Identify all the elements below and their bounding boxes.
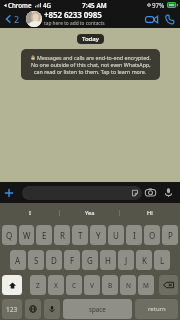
staticText: U <box>113 230 119 241</box>
button[interactable]: Profile photo <box>26 11 42 27</box>
button[interactable]: Stickers <box>22 186 142 200</box>
staticText: J <box>125 255 128 266</box>
staticText: F <box>70 255 75 266</box>
button[interactable]: L <box>154 250 170 270</box>
staticText: can read or listen to them. Tap to learn… <box>34 68 147 75</box>
staticText: D <box>51 255 57 266</box>
button[interactable]: C <box>66 275 82 295</box>
button[interactable]: H <box>100 250 116 270</box>
button[interactable]: T <box>72 225 88 245</box>
staticText: N <box>126 281 131 290</box>
staticText: C <box>72 281 77 290</box>
button[interactable]: V <box>84 275 100 295</box>
button[interactable]: W <box>19 225 34 245</box>
button[interactable]: F <box>64 250 80 270</box>
staticText: R <box>60 230 65 241</box>
staticText: Chrome <box>8 1 32 9</box>
staticText: 7:45 AM <box>82 1 107 10</box>
staticText: K <box>142 255 147 266</box>
staticText: I <box>133 230 136 241</box>
staticText: E <box>42 230 47 241</box>
staticText: tap here to add to contacts <box>44 20 105 27</box>
button[interactable]: Today <box>77 34 104 44</box>
staticText: X <box>54 281 58 290</box>
button[interactable]: D <box>46 250 62 270</box>
button[interactable]: I <box>126 225 142 245</box>
staticText: return <box>148 305 166 313</box>
staticText: P <box>168 230 173 241</box>
button[interactable]: P <box>162 225 178 245</box>
staticText: Yea <box>85 209 95 217</box>
staticText: S <box>34 255 39 266</box>
staticText: M <box>143 281 149 290</box>
staticText: +852 6233 0985 <box>44 9 102 20</box>
button[interactable]: Y <box>90 225 106 245</box>
button[interactable]: B <box>102 275 118 295</box>
button[interactable]: A <box>10 250 26 270</box>
staticText: T <box>78 230 83 241</box>
staticText: 123 <box>6 305 18 314</box>
staticText: 2 <box>14 13 20 25</box>
staticText: H <box>105 255 111 266</box>
staticText: G <box>87 255 93 266</box>
button[interactable]: Dictate <box>44 299 60 319</box>
button[interactable]: Q <box>2 225 17 245</box>
staticText: Z <box>36 281 40 290</box>
button[interactable]: Attach <box>3 187 15 199</box>
button[interactable]: S <box>28 250 44 270</box>
button[interactable]: Shift <box>2 275 22 295</box>
button[interactable]: R <box>54 225 70 245</box>
button[interactable]: space <box>63 299 132 319</box>
staticText: No one outside of this chat, not even Wh… <box>31 61 151 68</box>
staticText: V <box>90 281 94 290</box>
staticText: space <box>89 305 106 313</box>
button[interactable]: G <box>82 250 98 270</box>
button[interactable]: U <box>108 225 124 245</box>
button[interactable]: X <box>48 275 64 295</box>
button[interactable]: Voice message <box>163 187 174 198</box>
button[interactable]: I <box>0 203 60 222</box>
other: Stickers <box>131 189 139 197</box>
button[interactable]: return <box>135 299 178 319</box>
button[interactable]: Backspace <box>159 275 178 295</box>
button[interactable]: +852 6233 0985 <box>42 10 145 28</box>
button[interactable]: M <box>138 275 154 295</box>
staticText: 97% <box>152 1 165 9</box>
button[interactable]: E <box>36 225 52 245</box>
staticText: O <box>149 230 156 241</box>
button[interactable]: Hi <box>120 203 180 222</box>
staticText: Today <box>82 35 99 43</box>
staticText: Q <box>6 230 13 241</box>
staticText: Hi <box>147 209 153 217</box>
button[interactable]: K <box>136 250 152 270</box>
button[interactable]: Switch keyboard <box>25 299 41 319</box>
staticText: W <box>23 230 31 241</box>
button[interactable]: Z <box>30 275 46 295</box>
staticText: I <box>29 209 31 217</box>
staticText: Y <box>96 230 101 241</box>
button[interactable]: Camera <box>145 187 156 198</box>
button[interactable]: Messages and calls are end-to-end encryp… <box>21 49 160 80</box>
staticText: Messages and calls are end-to-end encryp… <box>37 54 151 61</box>
button[interactable]: J <box>118 250 134 270</box>
button[interactable]: Back <box>2 13 21 25</box>
button[interactable]: O <box>144 225 160 245</box>
button[interactable]: Yea <box>60 203 120 222</box>
button[interactable]: 123 <box>2 299 22 319</box>
staticText: L <box>160 255 165 266</box>
staticText: 4G <box>43 1 52 9</box>
button[interactable]: Video call <box>145 14 158 25</box>
staticText: A <box>15 255 21 266</box>
staticText: B <box>108 281 113 290</box>
button[interactable]: Voice call <box>164 14 175 25</box>
button[interactable]: N <box>120 275 136 295</box>
